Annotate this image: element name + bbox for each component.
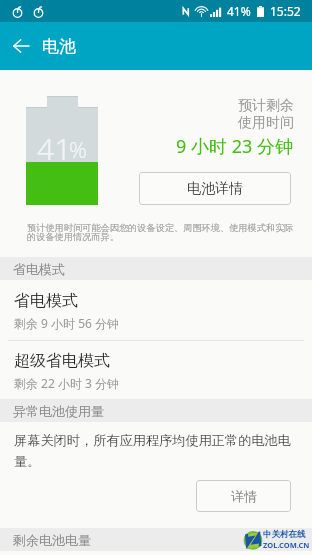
staticText: 剩余 22 小时 3 分钟	[14, 375, 120, 391]
staticText: 详情	[231, 488, 257, 504]
button[interactable]: 省电模式	[0, 280, 312, 339]
button[interactable]: 电池详情	[139, 172, 291, 205]
staticText: 41	[37, 128, 72, 169]
staticText: 中关村在线	[263, 529, 306, 540]
staticText: %	[69, 134, 87, 164]
staticText: 超级省电模式	[14, 351, 110, 371]
staticText: 异常电池使用量	[13, 403, 104, 419]
button[interactable]: Back	[6, 31, 36, 61]
staticText: 电池详情	[187, 180, 243, 198]
staticText: 9 小时 23 分钟	[176, 134, 293, 159]
staticText: 省电模式	[14, 291, 78, 311]
staticText: 电池	[42, 36, 76, 57]
staticText: 省电模式	[13, 261, 65, 277]
staticText: 屏幕关闭时，所有应用程序均使用正常的电池电量。	[14, 432, 296, 470]
staticText: 41%	[227, 3, 251, 19]
staticText: ZOL.COM.CN	[263, 540, 310, 550]
staticText: 预计使用时间可能会因您的设备设定、周围环境、使用模式和实际的设备使用情况而异。	[27, 222, 295, 243]
staticText: 剩余电池电量	[13, 532, 91, 548]
button[interactable]: 详情	[196, 480, 291, 512]
staticText: 预计剩余 使用时间	[238, 97, 294, 131]
staticText: 剩余 9 小时 56 分钟	[14, 315, 120, 331]
staticText: 15:52	[270, 3, 301, 19]
button[interactable]: 超级省电模式	[0, 340, 312, 399]
